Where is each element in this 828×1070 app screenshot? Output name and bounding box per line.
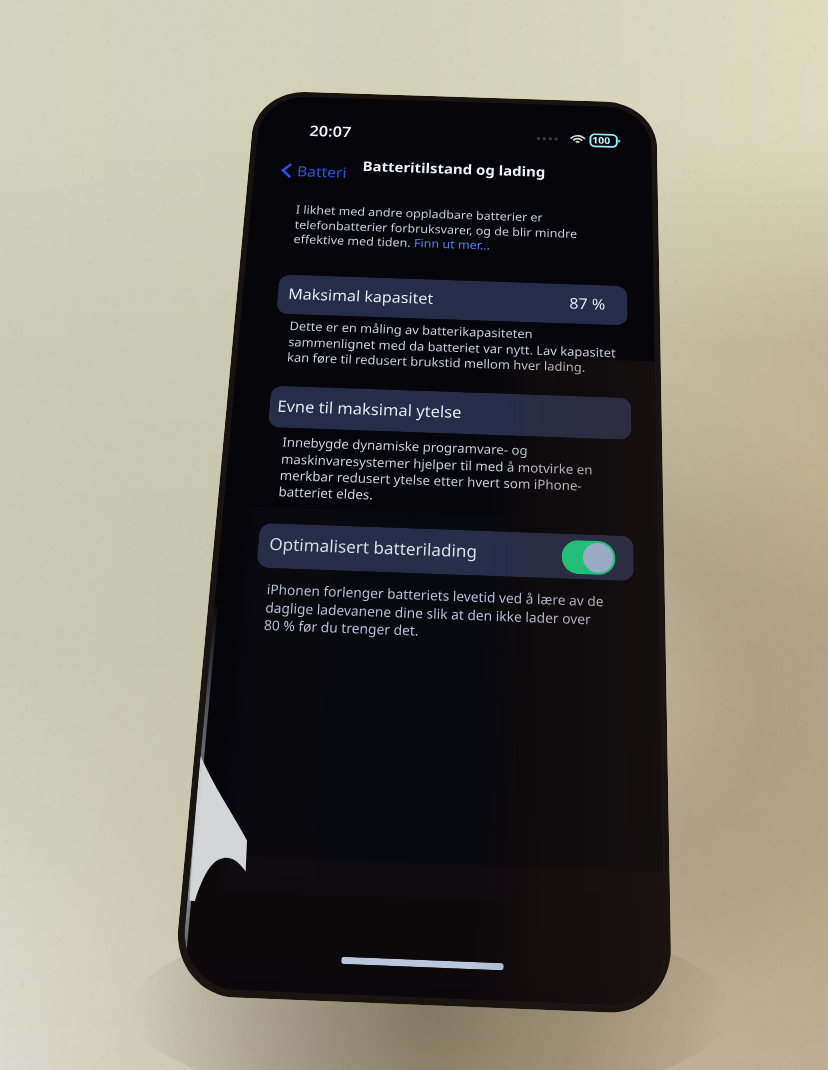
staticText: Innebygde dynamiske programvare- og mask… <box>278 433 593 511</box>
button[interactable]: Maksimal kapasitet <box>276 274 627 325</box>
button[interactable]: Batteri <box>281 160 347 182</box>
staticText: I likhet med andre oppladbare batterier … <box>293 202 577 256</box>
button[interactable]: Optimalisert batterilading <box>256 523 634 581</box>
staticText: Evne til maksimal ytelse <box>277 395 462 423</box>
staticText: Batteri <box>296 161 347 182</box>
button[interactable]: Evne til maksimal ytelse <box>268 385 632 440</box>
staticText: Maksimal kapasitet <box>288 283 434 308</box>
staticText: Optimalisert batterilading <box>269 532 478 562</box>
button[interactable]: Optimalisert batterilading, på <box>561 540 615 575</box>
staticText: 100 <box>592 134 610 147</box>
staticText: iPhonen forlenger batteriets levetid ved… <box>263 580 604 647</box>
staticText: Batteritilstand og lading <box>362 157 545 181</box>
staticText: Dette er en måling av batterikapasiteten… <box>286 318 616 376</box>
staticText: 87 % <box>569 293 606 314</box>
staticText: 20:07 <box>309 121 353 142</box>
